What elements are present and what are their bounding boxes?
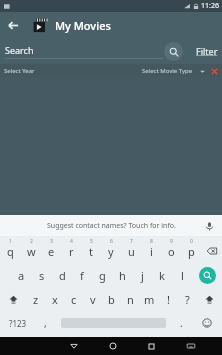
staticText: ?123 [9, 318, 27, 329]
staticText: 7 [130, 238, 133, 245]
button[interactable]: l [172, 263, 192, 287]
staticText: b [108, 292, 115, 307]
staticText: i [150, 244, 153, 259]
button[interactable]: ! [159, 287, 178, 311]
button[interactable]: j [132, 263, 152, 287]
staticText: r [69, 244, 74, 259]
staticText: 0 [190, 238, 193, 245]
staticText: ! [167, 292, 170, 307]
staticText: n [127, 292, 134, 307]
button[interactable]: Shift [0, 287, 26, 311]
staticText: 3 [50, 238, 53, 245]
button[interactable]: , [35, 311, 56, 335]
staticText: 8 [150, 238, 153, 245]
button[interactable]: x [45, 287, 64, 311]
button[interactable]: Home [93, 337, 132, 355]
staticText: v [90, 292, 96, 307]
staticText: d [59, 268, 66, 283]
button[interactable]: v [83, 287, 102, 311]
button[interactable]: Select Movie Type [142, 67, 193, 75]
button[interactable]: Search [164, 42, 183, 61]
staticText: c [71, 292, 77, 307]
button[interactable]: Back [0, 12, 26, 38]
staticText: y [108, 244, 114, 259]
button[interactable]: ?123 [0, 311, 35, 335]
button[interactable]: 3 [41, 238, 61, 263]
staticText: . [180, 316, 183, 330]
button[interactable]: s [32, 263, 52, 287]
staticText: l [181, 268, 184, 283]
button[interactable]: 6 [101, 238, 121, 263]
staticText: m [144, 292, 155, 307]
button[interactable]: Recent apps [132, 337, 171, 355]
staticText: j [141, 268, 144, 283]
staticText: 1 [9, 238, 12, 245]
staticText: 11:26 [201, 1, 219, 11]
button[interactable]: Search [199, 267, 216, 284]
staticText: 5 [90, 238, 93, 245]
button[interactable]: d [52, 263, 72, 287]
staticText: f [80, 268, 84, 283]
staticText: s [39, 268, 45, 283]
staticText: w [27, 244, 36, 259]
button[interactable]: z [26, 287, 45, 311]
button[interactable]: 7 [121, 238, 141, 263]
button[interactable]: f [72, 263, 92, 287]
staticText: k [159, 268, 165, 283]
button[interactable]: 5 [81, 238, 101, 263]
button[interactable]: n [121, 287, 140, 311]
button[interactable]: 4 [61, 238, 81, 263]
staticText: e [48, 244, 55, 259]
staticText: g [99, 268, 106, 283]
button[interactable]: k [152, 263, 172, 287]
staticText: 6 [110, 238, 113, 245]
staticText: Suggest contact names? Touch for info. [47, 221, 176, 231]
button[interactable]: 1 [0, 238, 21, 263]
staticText: h [119, 268, 126, 283]
staticText: t [89, 244, 93, 259]
staticText: q [7, 244, 14, 259]
button[interactable]: g [92, 263, 112, 287]
button[interactable]: . [171, 311, 192, 335]
staticText: , [44, 316, 47, 330]
staticText: 4 [70, 238, 73, 245]
button[interactable]: 8 [141, 238, 161, 263]
button[interactable]: m [140, 287, 159, 311]
button[interactable]: Clear filters [209, 66, 219, 76]
button[interactable]: 0 [181, 238, 201, 263]
button[interactable]: Emoji [192, 311, 222, 335]
button[interactable]: 9 [161, 238, 181, 263]
staticText: o [168, 244, 175, 259]
button[interactable]: Hide keyboard [54, 337, 93, 355]
button[interactable]: Backspace [201, 238, 222, 263]
staticText: z [33, 292, 39, 307]
staticText: p [188, 244, 195, 259]
button[interactable]: 2 [21, 238, 41, 263]
staticText: u [128, 244, 135, 259]
button[interactable]: c [64, 287, 83, 311]
button[interactable]: Shift [197, 287, 222, 311]
staticText: My Movies [55, 18, 111, 33]
staticText: Filter [196, 45, 218, 57]
button[interactable]: a [11, 263, 32, 287]
button[interactable]: Switch keyboard [171, 337, 210, 355]
staticText: a [18, 268, 25, 283]
staticText: Select Year [4, 67, 35, 75]
button[interactable]: ? [178, 287, 197, 311]
staticText: Select Movie Type [142, 67, 193, 75]
button[interactable]: Voice input [202, 219, 216, 233]
button[interactable]: Expand [198, 67, 206, 75]
staticText: 9 [170, 238, 173, 245]
staticText: 2 [30, 238, 33, 245]
button[interactable]: h [112, 263, 132, 287]
button[interactable]: b [102, 287, 121, 311]
button[interactable]: Filter [196, 45, 218, 57]
button[interactable]: Select Year [4, 67, 35, 75]
staticText: x [52, 292, 58, 307]
staticText: ? [185, 292, 190, 307]
staticText: Search [5, 44, 34, 56]
